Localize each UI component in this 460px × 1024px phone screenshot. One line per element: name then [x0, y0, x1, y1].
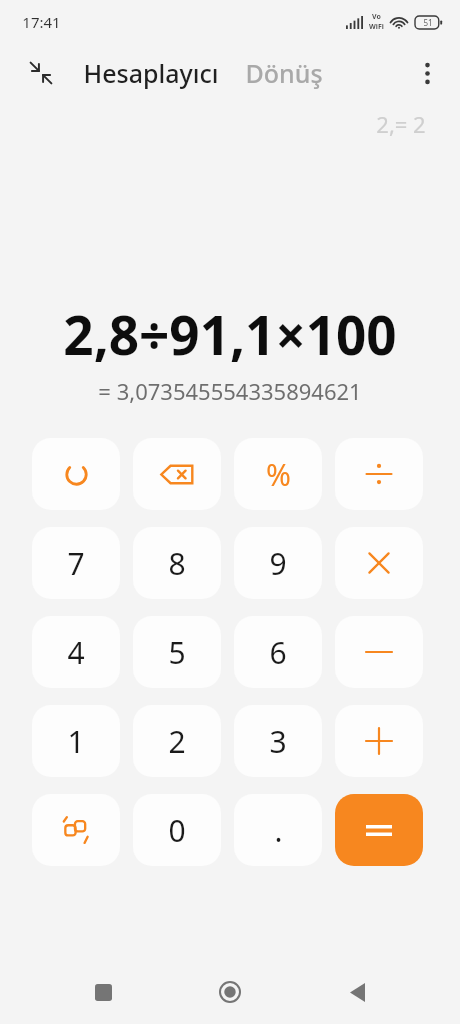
button[interactable]: Plus: [335, 705, 423, 777]
button[interactable]: Minus: [335, 616, 423, 688]
button[interactable]: Dönüş: [242, 50, 326, 96]
staticText: 7: [67, 543, 85, 584]
button[interactable]: Clear: [32, 438, 120, 510]
button[interactable]: Backspace: [133, 438, 221, 510]
button[interactable]: 7: [32, 527, 120, 599]
staticText: 1: [67, 721, 85, 762]
staticText: 2,8÷91,1×100: [63, 298, 397, 370]
button[interactable]: 1: [32, 705, 120, 777]
button[interactable]: 2,= 2: [372, 105, 430, 143]
button[interactable]: Back: [333, 968, 381, 1016]
button[interactable]: Equals: [335, 794, 423, 866]
staticText: .: [274, 810, 283, 851]
staticText: 5: [168, 632, 186, 673]
button[interactable]: Percent: [234, 438, 322, 510]
button[interactable]: 2: [133, 705, 221, 777]
staticText: 3: [269, 721, 287, 762]
button[interactable]: 8: [133, 527, 221, 599]
button[interactable]: Recents: [79, 968, 127, 1016]
button[interactable]: 0: [133, 794, 221, 866]
staticText: Dönüş: [245, 56, 323, 90]
staticText: WiFi: [369, 22, 384, 32]
button[interactable]: Divide: [335, 438, 423, 510]
button[interactable]: 5: [133, 616, 221, 688]
button[interactable]: Home: [206, 968, 254, 1016]
staticText: %: [266, 454, 291, 495]
button[interactable]: .: [234, 794, 322, 866]
staticText: 17:41: [22, 12, 61, 32]
button[interactable]: Unit converter: [32, 794, 120, 866]
button[interactable]: Collapse: [20, 52, 62, 94]
button[interactable]: More options: [406, 52, 448, 94]
staticText: 0: [168, 810, 186, 851]
staticText: 4: [67, 632, 85, 673]
staticText: 2,= 2: [376, 109, 426, 139]
button[interactable]: Multiply: [335, 527, 423, 599]
staticText: 6: [269, 632, 287, 673]
staticText: 9: [269, 543, 287, 584]
staticText: 51: [423, 17, 433, 28]
button[interactable]: 4: [32, 616, 120, 688]
staticText: = 3,073545554335894621: [98, 376, 362, 406]
button[interactable]: Hesaplayıcı: [80, 50, 222, 96]
staticText: 2: [168, 721, 186, 762]
staticText: Vo: [372, 12, 381, 22]
staticText: Hesaplayıcı: [83, 56, 219, 90]
staticText: 8: [168, 543, 186, 584]
button[interactable]: 9: [234, 527, 322, 599]
button[interactable]: 6: [234, 616, 322, 688]
button[interactable]: 3: [234, 705, 322, 777]
